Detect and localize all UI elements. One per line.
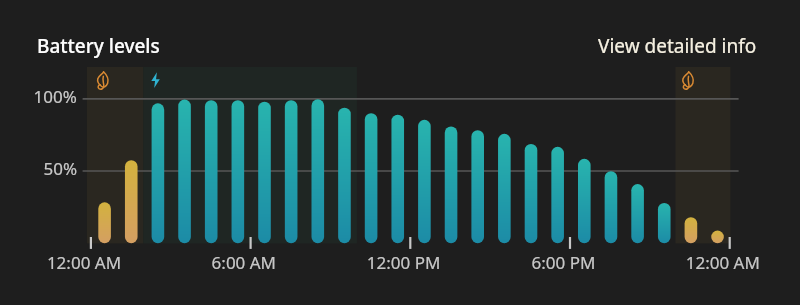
button[interactable]: Battery levels chart	[0, 0, 800, 305]
